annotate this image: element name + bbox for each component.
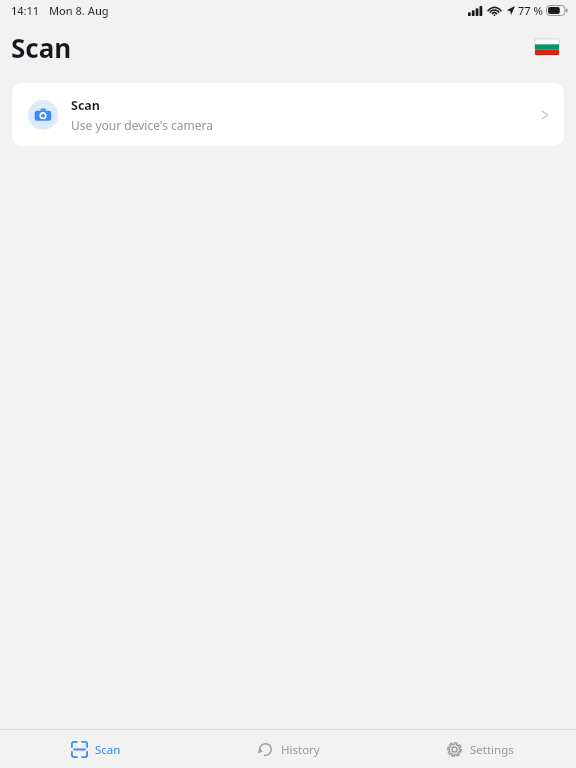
staticText: History — [281, 742, 320, 758]
staticText: Settings — [470, 742, 514, 758]
staticText: Scan — [71, 97, 100, 114]
staticText: 14:11 — [11, 3, 40, 18]
other: Settings — [446, 741, 463, 758]
staticText: Use your device's camera — [71, 117, 213, 133]
other: History — [257, 741, 274, 758]
staticText: Mon 8. Aug — [49, 3, 109, 18]
button[interactable]: Scan — [12, 83, 564, 146]
staticText: Scan — [95, 742, 121, 758]
staticText: Scan — [11, 30, 72, 65]
button[interactable]: Scan — [0, 730, 192, 768]
other: Scan — [71, 741, 88, 758]
button[interactable]: Settings — [384, 730, 576, 768]
button[interactable]: History — [192, 730, 384, 768]
staticText: 77 % — [518, 3, 543, 18]
button[interactable]: Language: Bulgarian — [532, 32, 562, 62]
